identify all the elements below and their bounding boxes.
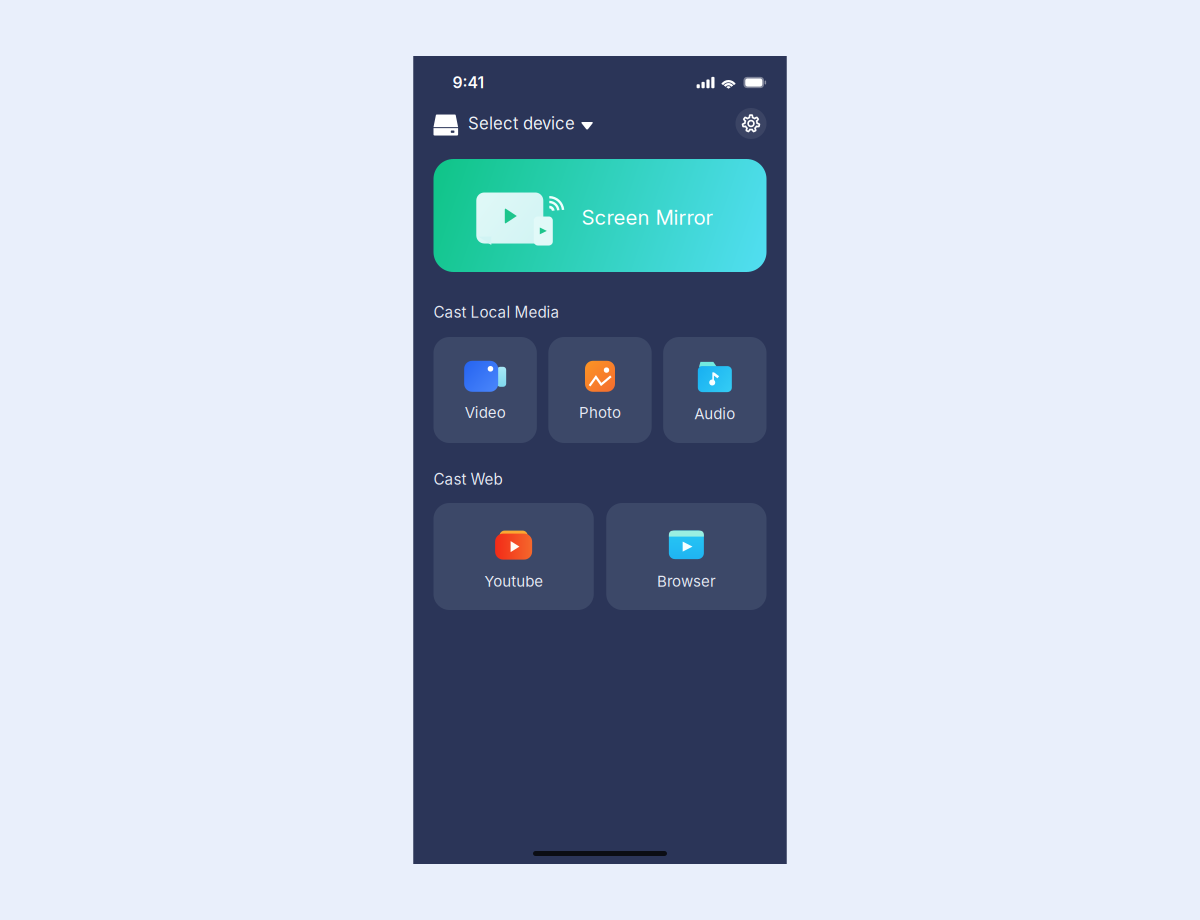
staticText: Select device [468, 113, 575, 134]
button[interactable]: Photo [548, 337, 652, 443]
button[interactable]: Video [433, 337, 537, 443]
button[interactable]: Browser [606, 503, 766, 610]
staticText: Cast Local Media [433, 303, 559, 321]
button[interactable]: Audio [663, 337, 766, 443]
staticText: Audio [694, 405, 735, 423]
staticText: Screen Mirror [581, 205, 713, 230]
button[interactable]: Settings [735, 108, 766, 139]
button[interactable]: Youtube [433, 503, 594, 610]
button[interactable]: Select device [433, 113, 593, 134]
staticText: Video [465, 403, 506, 421]
staticText: Youtube [484, 572, 543, 590]
button[interactable]: Screen Mirror [433, 159, 766, 272]
staticText: Photo [579, 403, 621, 421]
staticText: 9:41 [452, 73, 484, 92]
staticText: Browser [657, 572, 716, 590]
staticText: Cast Web [433, 470, 502, 488]
